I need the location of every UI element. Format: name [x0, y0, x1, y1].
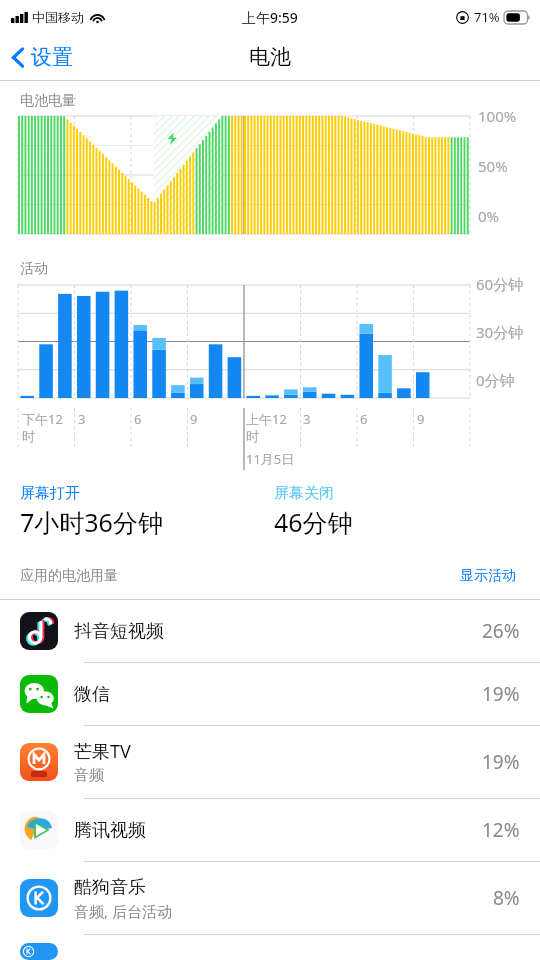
- other: 应用: [20, 943, 58, 960]
- staticText: 酷狗音乐: [74, 876, 146, 899]
- staticText: 电池电量: [20, 92, 76, 110]
- staticText: 9: [190, 410, 198, 428]
- staticText: 30分钟: [476, 322, 524, 342]
- staticText: 3: [303, 410, 311, 428]
- staticText: 下午12 时: [22, 410, 63, 445]
- other: 腾讯视频: [20, 811, 58, 849]
- staticText: 上午12 时: [246, 410, 287, 445]
- staticText: 腾讯视频: [74, 819, 146, 842]
- staticText: 微信: [74, 683, 110, 706]
- staticText: 音频, 后台活动: [74, 901, 172, 921]
- staticText: 0分钟: [476, 370, 515, 390]
- other: 抖音短视频: [20, 612, 58, 650]
- staticText: 11月5日: [246, 450, 295, 468]
- staticText: 7小时36分钟: [20, 505, 163, 539]
- button[interactable]: 芒果TV: [0, 726, 540, 799]
- staticText: 9: [417, 410, 425, 428]
- staticText: 100%: [478, 106, 517, 126]
- staticText: 活动: [20, 260, 48, 278]
- staticText: 12%: [482, 817, 520, 843]
- staticText: 音频: [74, 766, 104, 785]
- staticText: 50%: [478, 156, 508, 176]
- staticText: 上午9:59: [242, 8, 298, 27]
- staticText: 抖音短视频: [74, 620, 164, 643]
- staticText: 应用的电池用量: [20, 567, 118, 585]
- staticText: 屏幕打开: [20, 484, 80, 503]
- staticText: 26%: [482, 618, 520, 644]
- staticText: 屏幕关闭: [274, 484, 334, 503]
- button[interactable]: 应用: [0, 935, 540, 960]
- staticText: 19%: [482, 681, 520, 707]
- staticText: 3: [78, 410, 86, 428]
- button[interactable]: 显示活动: [456, 563, 520, 589]
- staticText: 19%: [482, 749, 520, 775]
- staticText: 中国移动: [32, 9, 84, 25]
- staticText: 71%: [474, 8, 500, 26]
- staticText: 显示活动: [460, 567, 516, 585]
- staticText: 6: [360, 410, 368, 428]
- other: 酷狗音乐: [20, 879, 58, 917]
- staticText: 6: [134, 410, 142, 428]
- button[interactable]: 腾讯视频: [0, 799, 540, 862]
- staticText: 设置: [31, 44, 73, 70]
- staticText: 电池: [249, 44, 291, 70]
- staticText: 60分钟: [476, 274, 524, 294]
- button[interactable]: 酷狗音乐: [0, 862, 540, 935]
- button[interactable]: 微信: [0, 663, 540, 726]
- other: 芒果TV: [20, 743, 58, 781]
- staticText: 46分钟: [274, 505, 353, 539]
- button[interactable]: 抖音短视频: [0, 600, 540, 663]
- staticText: 8%: [493, 885, 520, 911]
- staticText: 芒果TV: [74, 739, 131, 764]
- other: 微信: [20, 675, 58, 713]
- staticText: 0%: [478, 206, 500, 226]
- button[interactable]: 设置: [0, 37, 87, 77]
